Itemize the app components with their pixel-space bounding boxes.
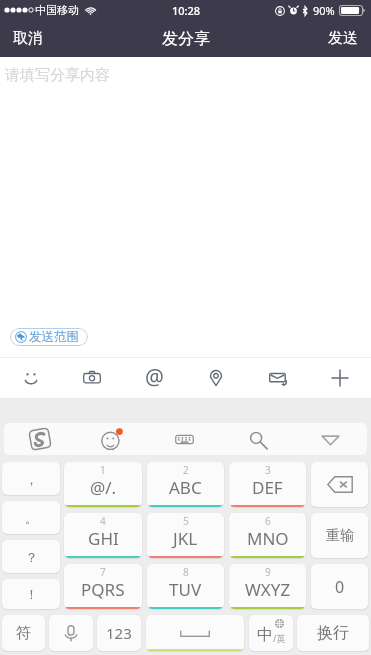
button[interactable]: 9 xyxy=(229,564,306,609)
staticText: DEF xyxy=(252,476,283,499)
staticText: 重输 xyxy=(326,527,354,545)
staticText: TUV xyxy=(169,578,202,601)
staticText: 123 xyxy=(106,623,132,643)
staticText: 6 xyxy=(265,514,271,528)
button[interactable]: Backspace xyxy=(311,462,368,507)
staticText: WXYZ xyxy=(245,578,291,601)
staticText: 10:28 xyxy=(172,3,201,18)
staticText: MNO xyxy=(247,527,289,550)
button[interactable]: Keyboard layout xyxy=(148,423,221,455)
button[interactable]: Mail xyxy=(247,358,309,398)
button[interactable]: ？ xyxy=(2,540,60,573)
button[interactable]: 0 xyxy=(311,564,368,609)
button[interactable]: 发送范围 xyxy=(10,328,88,346)
staticText: 5 xyxy=(183,514,189,528)
button[interactable]: More xyxy=(309,358,371,398)
button[interactable]: 123 xyxy=(97,615,141,651)
staticText: JKL xyxy=(173,527,198,550)
staticText: 发送 xyxy=(328,29,358,48)
staticText: 4 xyxy=(100,514,106,528)
staticText: 中 xyxy=(257,625,273,645)
staticText: 9 xyxy=(265,565,271,579)
staticText: @ xyxy=(145,363,164,392)
staticText: 2 xyxy=(183,463,189,477)
staticText: @/. xyxy=(90,476,117,499)
button[interactable]: 发送 xyxy=(315,20,371,57)
staticText: 0 xyxy=(335,576,345,598)
staticText: ， xyxy=(25,471,38,487)
button[interactable]: ！ xyxy=(2,579,60,609)
button[interactable]: 3 xyxy=(229,462,306,507)
staticText: ！ xyxy=(25,586,38,602)
button[interactable]: 6 xyxy=(229,513,306,558)
button[interactable]: 换行 xyxy=(297,615,369,651)
button[interactable]: 4 xyxy=(64,513,142,558)
button[interactable]: Switch language xyxy=(249,615,293,651)
staticText: 90% xyxy=(313,3,335,18)
button[interactable]: 8 xyxy=(147,564,224,609)
staticText: 8 xyxy=(183,565,189,579)
staticText: 3 xyxy=(265,463,271,477)
button[interactable]: Emoji xyxy=(0,358,61,398)
staticText: 取消 xyxy=(13,29,43,48)
staticText: 换行 xyxy=(317,623,349,643)
staticText: 符 xyxy=(16,624,31,643)
button[interactable]: 7 xyxy=(64,564,142,609)
button[interactable]: Camera xyxy=(61,358,123,398)
button[interactable]: 2 xyxy=(147,462,224,507)
button[interactable]: 5 xyxy=(147,513,224,558)
button[interactable]: 1 xyxy=(64,462,142,507)
button[interactable]: Space xyxy=(146,615,244,651)
button[interactable]: ， xyxy=(2,462,60,495)
button[interactable]: 重输 xyxy=(311,513,368,558)
staticText: ？ xyxy=(25,549,38,565)
staticText: 发送范围 xyxy=(29,329,79,345)
staticText: 1 xyxy=(100,463,106,477)
staticText: GHI xyxy=(88,527,119,550)
staticText: 中国移动 xyxy=(35,3,79,17)
staticText: 。 xyxy=(25,510,38,526)
staticText: 请填写分享内容 xyxy=(5,66,110,85)
staticText: PQRS xyxy=(81,578,125,601)
button[interactable]: Mention xyxy=(123,358,185,398)
button[interactable]: Hide keyboard xyxy=(294,423,367,455)
staticText: ABC xyxy=(169,476,202,499)
button[interactable]: Sogou input method xyxy=(4,423,76,455)
staticText: 发分享 xyxy=(162,29,210,49)
button[interactable]: 符 xyxy=(2,615,45,651)
button[interactable]: Location xyxy=(185,358,247,398)
staticText: 7 xyxy=(100,565,106,579)
staticText: /英 xyxy=(273,632,286,644)
button[interactable]: Search xyxy=(221,423,294,455)
button[interactable]: 取消 xyxy=(0,20,56,57)
button[interactable]: Emoji xyxy=(76,423,148,455)
button[interactable]: Voice input xyxy=(49,615,93,651)
button[interactable]: 。 xyxy=(2,501,60,534)
